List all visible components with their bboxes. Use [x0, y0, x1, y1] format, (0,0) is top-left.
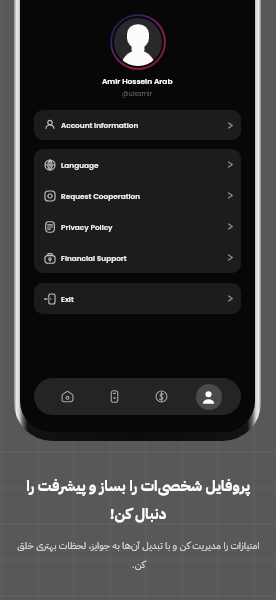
button[interactable]: Home [43, 378, 91, 415]
staticText: Financial Support [61, 253, 127, 263]
button[interactable]: Request Cooperation [34, 180, 241, 211]
staticText: Account Information [61, 120, 139, 130]
button[interactable]: Account Information [34, 110, 241, 140]
button[interactable]: Cards [91, 378, 138, 415]
button[interactable]: Exit [34, 283, 241, 314]
staticText: @uixamir [122, 89, 153, 98]
staticText: Request Cooperation [61, 191, 141, 201]
staticText: Exit [61, 294, 74, 304]
button[interactable]: Coins [138, 378, 185, 415]
staticText: امتیازات را مدیریت کن و با تبدیل آن‌ها ب… [17, 538, 260, 573]
button[interactable]: Language [34, 149, 241, 180]
button[interactable]: Profile [185, 378, 232, 415]
button[interactable]: Financial Support [34, 242, 241, 273]
staticText: Amir Hossein Arab [102, 76, 173, 86]
staticText: Privacy Policy [61, 222, 113, 232]
button[interactable]: Privacy Policy [34, 211, 241, 242]
staticText: Language [61, 160, 99, 170]
staticText: پروفایل شخصی‌ات را بساز و پیشرفت را دنبا… [26, 475, 250, 525]
